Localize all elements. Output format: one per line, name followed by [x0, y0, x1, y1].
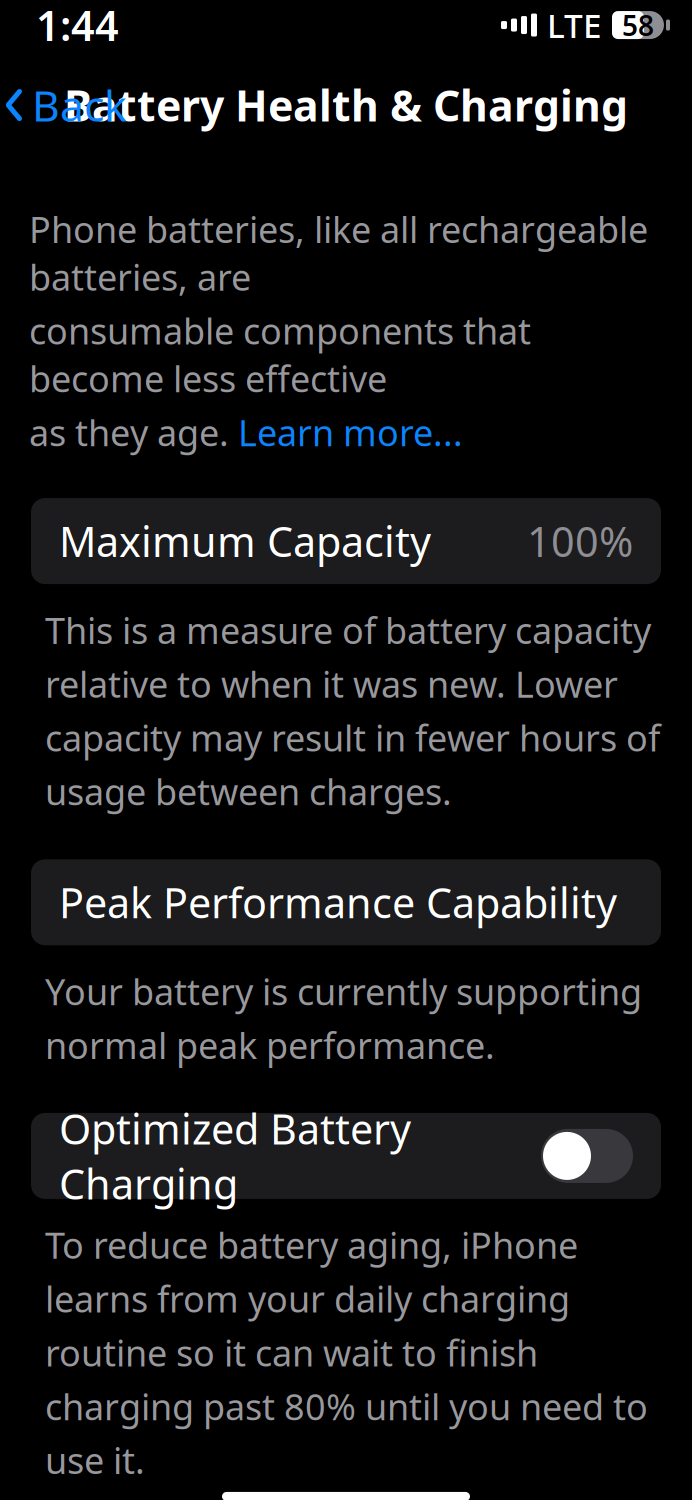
- staticText: Peak Performance Capability: [59, 875, 617, 930]
- staticText: Phone batteries, like all rechargeable b…: [29, 205, 648, 301]
- staticText: Optimized Battery Charging: [59, 1101, 411, 1211]
- staticText: This is a measure of battery capacity re…: [45, 606, 660, 815]
- button[interactable]: Back: [0, 67, 127, 143]
- button[interactable]: Learn more...: [238, 408, 463, 456]
- staticText: Maximum Capacity: [59, 514, 431, 568]
- staticText: as they age.: [29, 408, 238, 456]
- button[interactable]: Maximum Capacity: [31, 498, 661, 584]
- button[interactable]: Optimized Battery Charging: [31, 1113, 661, 1199]
- staticText: Your battery is currently supporting nor…: [45, 967, 642, 1069]
- staticText: consumable components that become less e…: [29, 307, 531, 402]
- staticText: 100%: [527, 514, 633, 568]
- button[interactable]: Optimized Battery Charging: [541, 1129, 633, 1183]
- staticText: LTE: [547, 3, 602, 47]
- staticText: Back: [32, 77, 127, 133]
- button[interactable]: Peak Performance Capability: [31, 859, 661, 945]
- staticText: Learn more...: [238, 408, 463, 456]
- staticText: 58: [622, 6, 654, 44]
- staticText: To reduce battery aging, iPhone learns f…: [45, 1221, 648, 1484]
- staticText: Battery Health & Charging: [64, 77, 628, 133]
- staticText: 1:44: [36, 0, 119, 52]
